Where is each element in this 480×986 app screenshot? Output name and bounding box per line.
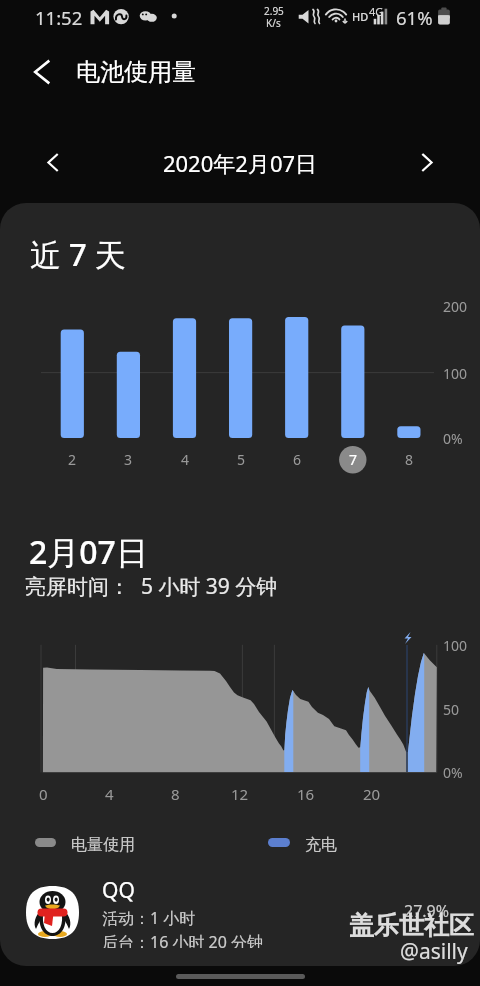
staticText: 8 [405, 450, 414, 469]
staticText: 100 [443, 636, 468, 655]
staticText: 活动：1 小时 [102, 907, 196, 929]
staticText: 5 [237, 450, 246, 469]
button[interactable]: 4 [157, 310, 213, 475]
staticText: 6 [293, 450, 302, 469]
staticText: 16 [297, 784, 315, 804]
staticText: 2月07日 [29, 530, 148, 574]
staticText: @asilly [400, 937, 468, 966]
staticText: 8 [171, 784, 180, 804]
button[interactable]: 8 [381, 310, 437, 475]
button[interactable]: Previous day [32, 142, 72, 182]
staticText: 电池使用量 [76, 57, 196, 87]
button[interactable]: Back [20, 50, 64, 94]
staticText: 12 [231, 784, 249, 804]
staticText: 0% [443, 429, 463, 448]
staticText: 27.9% [404, 900, 450, 922]
staticText: QQ [102, 876, 135, 905]
staticText: K/s [266, 16, 281, 30]
staticText: HD [352, 9, 369, 24]
staticText: 7 [349, 450, 358, 469]
staticText: 近 7 天 [30, 233, 126, 275]
staticText: 2020年2月07日 [0, 148, 480, 178]
staticText: 50 [443, 700, 460, 719]
button[interactable]: 7 [325, 310, 381, 475]
staticText: 2 [68, 450, 77, 469]
staticText: 11:52 [35, 5, 83, 30]
staticText: 0 [39, 784, 48, 804]
button[interactable]: QQ [0, 876, 480, 948]
staticText: 100 [443, 364, 468, 383]
button[interactable]: 3 [100, 310, 156, 475]
staticText: 200 [443, 297, 468, 316]
staticText: 电量使用 [71, 835, 135, 855]
staticText: 61% [396, 5, 433, 30]
button[interactable]: 6 [269, 310, 325, 475]
staticText: 0% [443, 763, 463, 782]
staticText: 2.95 [264, 4, 284, 18]
staticText: 4 [105, 784, 114, 804]
staticText: 4G [369, 4, 384, 19]
staticText: 4 [181, 450, 190, 469]
staticText: 亮屏时间： 5 小时 39 分钟 [25, 572, 278, 601]
button[interactable]: Next day [407, 142, 447, 182]
button[interactable]: 2 [44, 310, 100, 475]
staticText: 盖乐世社区 [349, 910, 474, 941]
staticText: 3 [124, 450, 133, 469]
button[interactable]: 5 [213, 310, 269, 475]
staticText: 20 [363, 784, 381, 804]
staticText: 充电 [305, 835, 337, 855]
staticText: 后台：16 小时 20 分钟 [102, 931, 264, 948]
